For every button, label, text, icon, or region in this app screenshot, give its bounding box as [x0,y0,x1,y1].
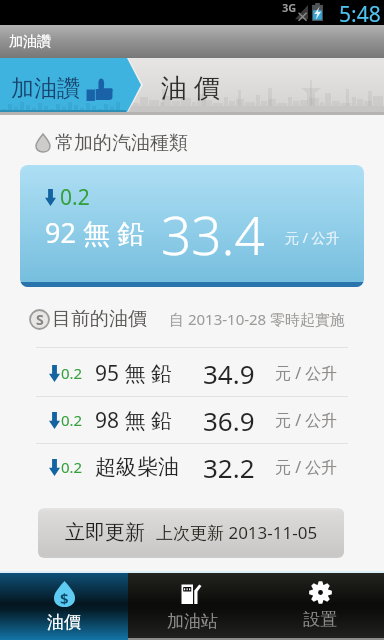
staticText: 常加的汽油種類 [55,131,188,155]
staticText: 加油讚 [11,74,80,103]
staticText: 92 無 鉛 [45,214,144,251]
staticText: 95 無 鉛 [95,359,172,388]
staticText: $ [60,588,69,608]
staticText: 98 無 鉛 [95,406,172,435]
button[interactable]: Gas stations [128,573,256,640]
other: Gas stations [180,581,205,606]
staticText: 元 / 公升 [285,228,340,247]
staticText: 油價 [47,612,81,633]
staticText: 元 / 公升 [275,409,338,431]
staticText: 設置 [303,609,337,630]
staticText: 0.2 [61,457,83,477]
other: Settings [309,581,332,604]
staticText: 36.9 [203,403,255,438]
button[interactable]: 立即更新 [38,508,344,556]
staticText: 油 價 [161,69,220,105]
staticText: 自 2013-10-28 零時起實施 [169,309,346,329]
staticText: 0.2 [61,363,83,383]
button[interactable]: 0.2 [0,397,384,443]
staticText: 元 / 公升 [275,362,338,384]
staticText: 5:48 [339,0,381,25]
button[interactable]: 0.2 [20,165,364,287]
button[interactable]: $ [0,573,128,640]
button[interactable]: Settings [256,573,384,640]
button[interactable]: 0.2 [0,444,384,490]
staticText: 3G [282,0,297,15]
staticText: 34.9 [203,356,255,391]
staticText: 33.4 [161,198,265,270]
staticText: 超級柴油 [95,454,179,480]
staticText: 加油站 [167,611,218,632]
staticText: 加油讚 [9,33,51,51]
staticText: 0.2 [60,183,90,212]
staticText: 目前的油價 [52,307,147,331]
button[interactable]: 0.2 [0,350,384,396]
staticText: 上次更新 2013-11-05 [156,521,318,544]
staticText: 元 / 公升 [275,456,338,478]
staticText: 立即更新 [65,520,145,545]
staticText: S [36,310,44,329]
other: Like [86,76,113,102]
staticText: 32.2 [203,450,255,485]
staticText: 0.2 [61,410,83,430]
